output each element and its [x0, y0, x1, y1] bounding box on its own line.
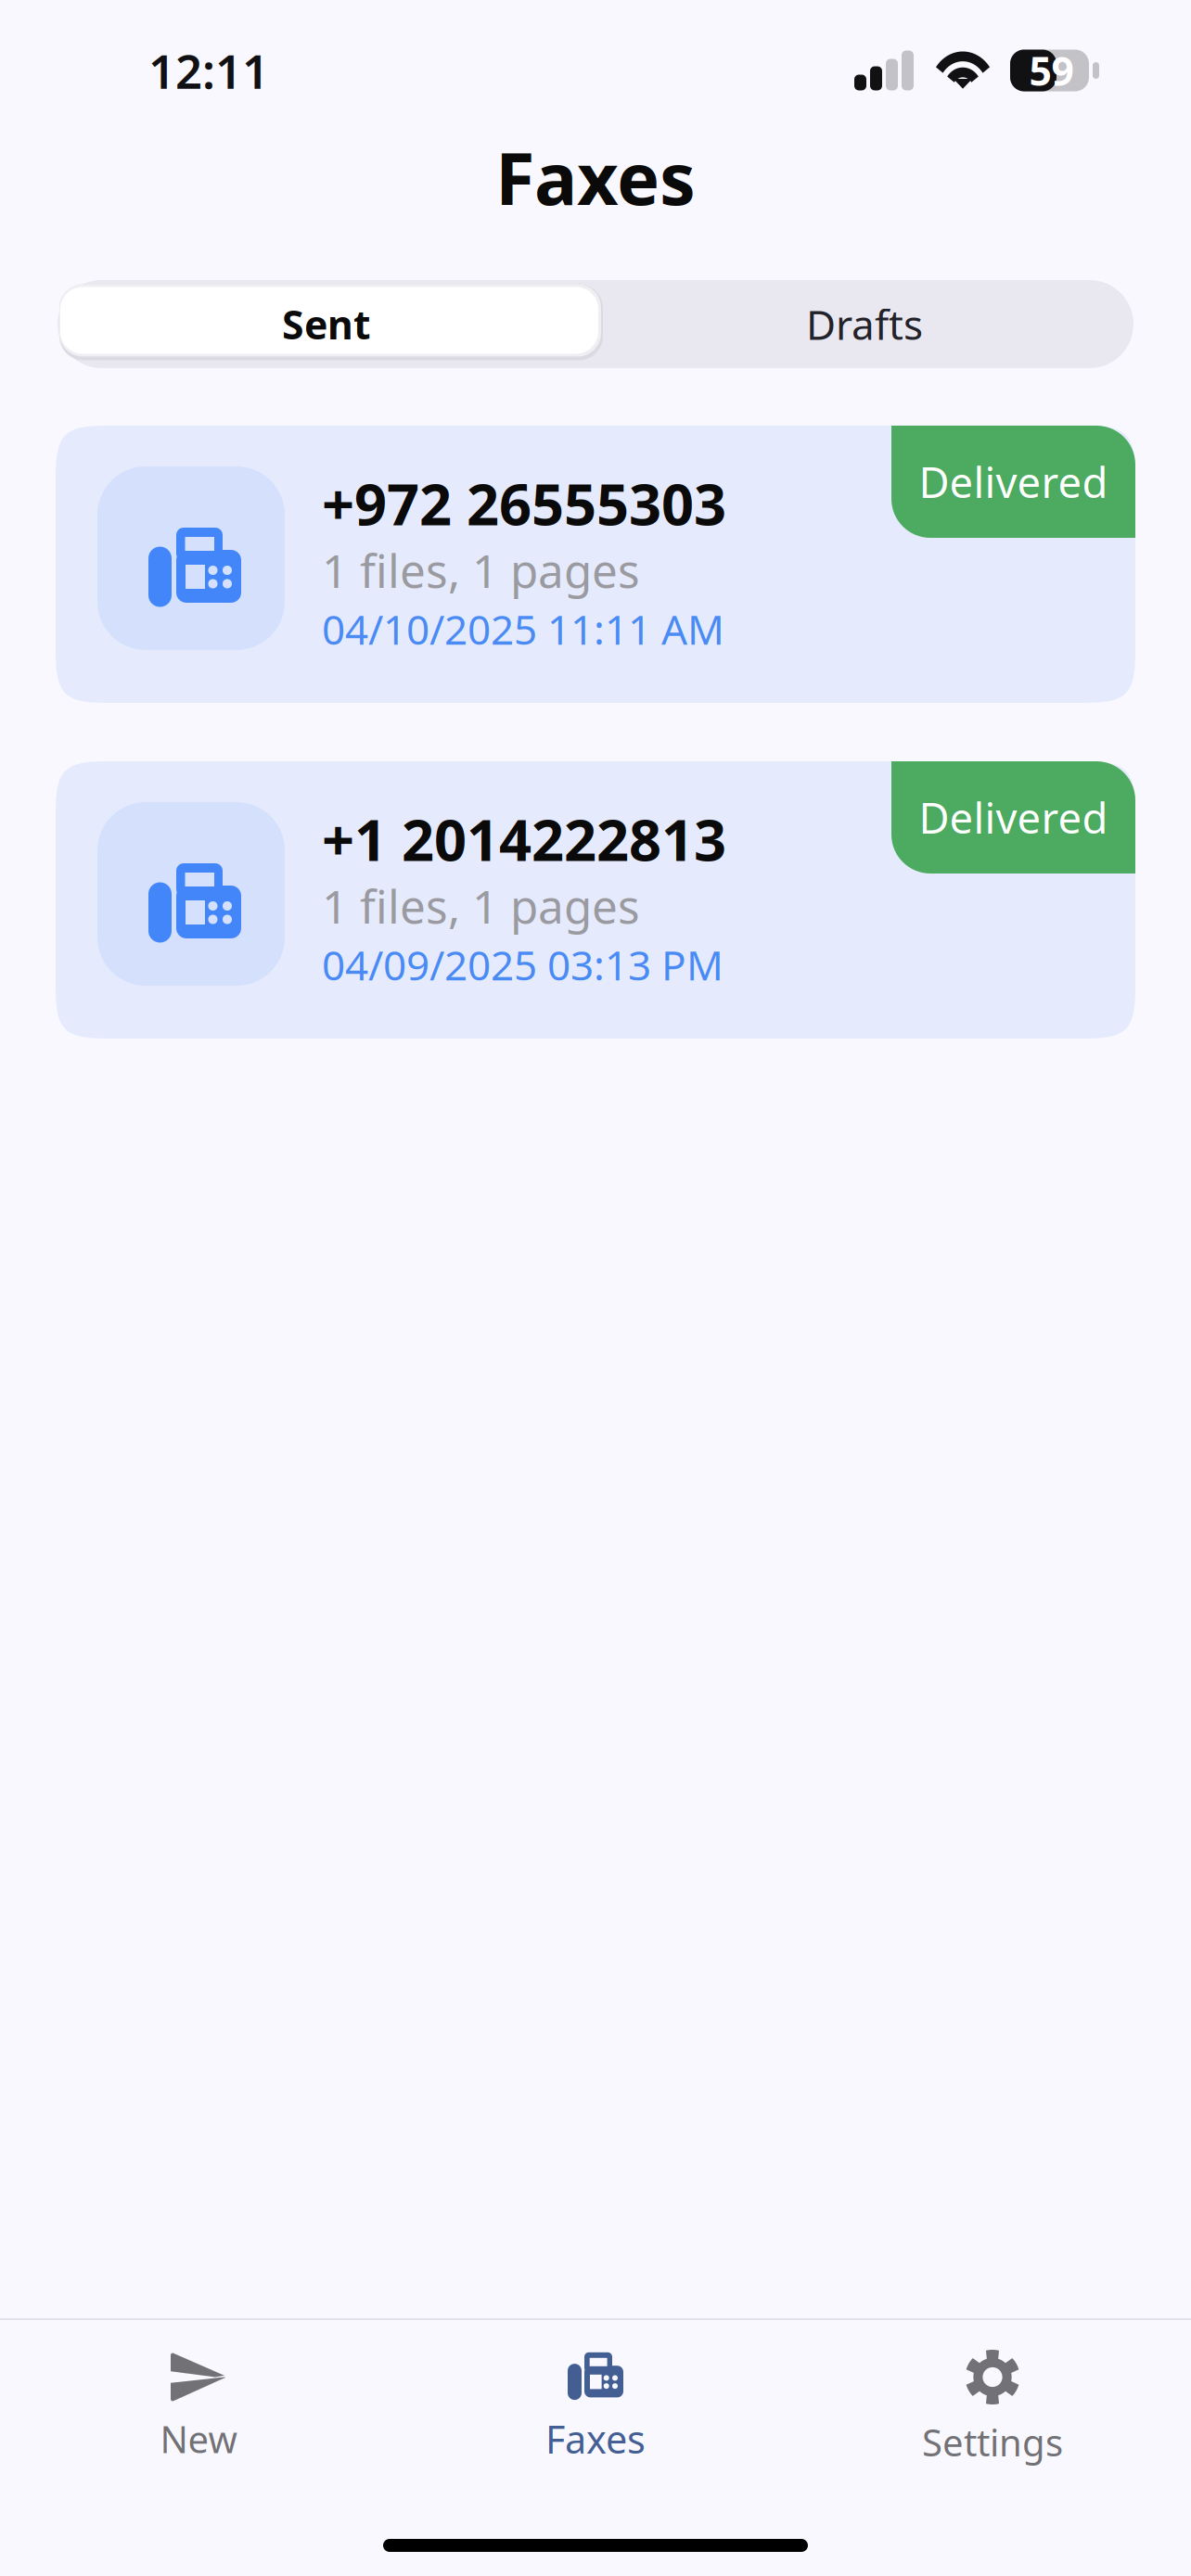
staticText: Drafts	[806, 297, 923, 351]
staticText: 59	[1029, 44, 1074, 97]
staticText: Sent	[282, 298, 371, 350]
staticText: 1 files, 1 pages	[322, 540, 640, 600]
staticText: Delivered	[919, 789, 1108, 845]
staticText: New	[160, 2414, 237, 2463]
staticText: 12:11	[148, 39, 269, 102]
staticText: Delivered	[919, 454, 1108, 510]
button[interactable]: New	[0, 2353, 397, 2463]
staticText: 04/10/2025 11:11 AM	[322, 602, 724, 656]
staticText: 1 files, 1 pages	[322, 875, 640, 936]
button[interactable]: Drafts	[595, 280, 1133, 368]
staticText: Settings	[922, 2417, 1063, 2467]
button[interactable]: +972 26555303, 1 files, 1 pages, 04/10/2…	[56, 426, 1135, 703]
staticText: Faxes	[545, 2413, 646, 2464]
button[interactable]: +1 2014222813, 1 files, 1 pages, 04/09/2…	[56, 761, 1135, 1039]
staticText: Faxes	[495, 130, 696, 225]
button[interactable]: Settings	[794, 2350, 1191, 2467]
button[interactable]: Sent	[58, 280, 595, 368]
staticText: 04/09/2025 03:13 PM	[322, 937, 724, 992]
button[interactable]: Faxes	[397, 2352, 794, 2464]
staticText: +972 26555303	[322, 465, 726, 541]
staticText: +1 2014222813	[322, 801, 726, 877]
